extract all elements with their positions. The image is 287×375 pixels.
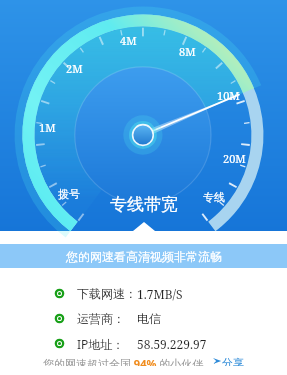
- staticText: 1.7MB/S: [137, 286, 183, 302]
- staticText: 2M: [66, 61, 83, 76]
- staticText: IP地址：: [77, 336, 125, 352]
- staticText: 10M: [217, 88, 240, 103]
- staticText: 您的网速看高清视频非常流畅: [66, 249, 222, 264]
- staticText: 您的网速超过全国 94% 的小伙伴: [43, 356, 212, 366]
- staticText: 拨号: [58, 187, 80, 201]
- staticText: 专线: [203, 190, 225, 204]
- staticText: 4M: [120, 33, 137, 48]
- staticText: 运营商：: [77, 311, 125, 326]
- staticText: 下载网速：: [77, 286, 137, 301]
- button[interactable]: 运营商：: [0, 306, 287, 331]
- staticText: 1M: [39, 120, 56, 135]
- staticText: 58.59.229.97: [137, 336, 207, 352]
- button[interactable]: 下载网速：: [0, 281, 287, 306]
- button[interactable]: IP地址：: [0, 331, 287, 356]
- staticText: 分享: [222, 356, 244, 366]
- staticText: 8M: [179, 44, 196, 59]
- button[interactable]: Share: [212, 356, 244, 366]
- staticText: 专线带宽: [110, 194, 178, 215]
- staticText: 20M: [223, 151, 246, 166]
- staticText: 电信: [137, 311, 161, 326]
